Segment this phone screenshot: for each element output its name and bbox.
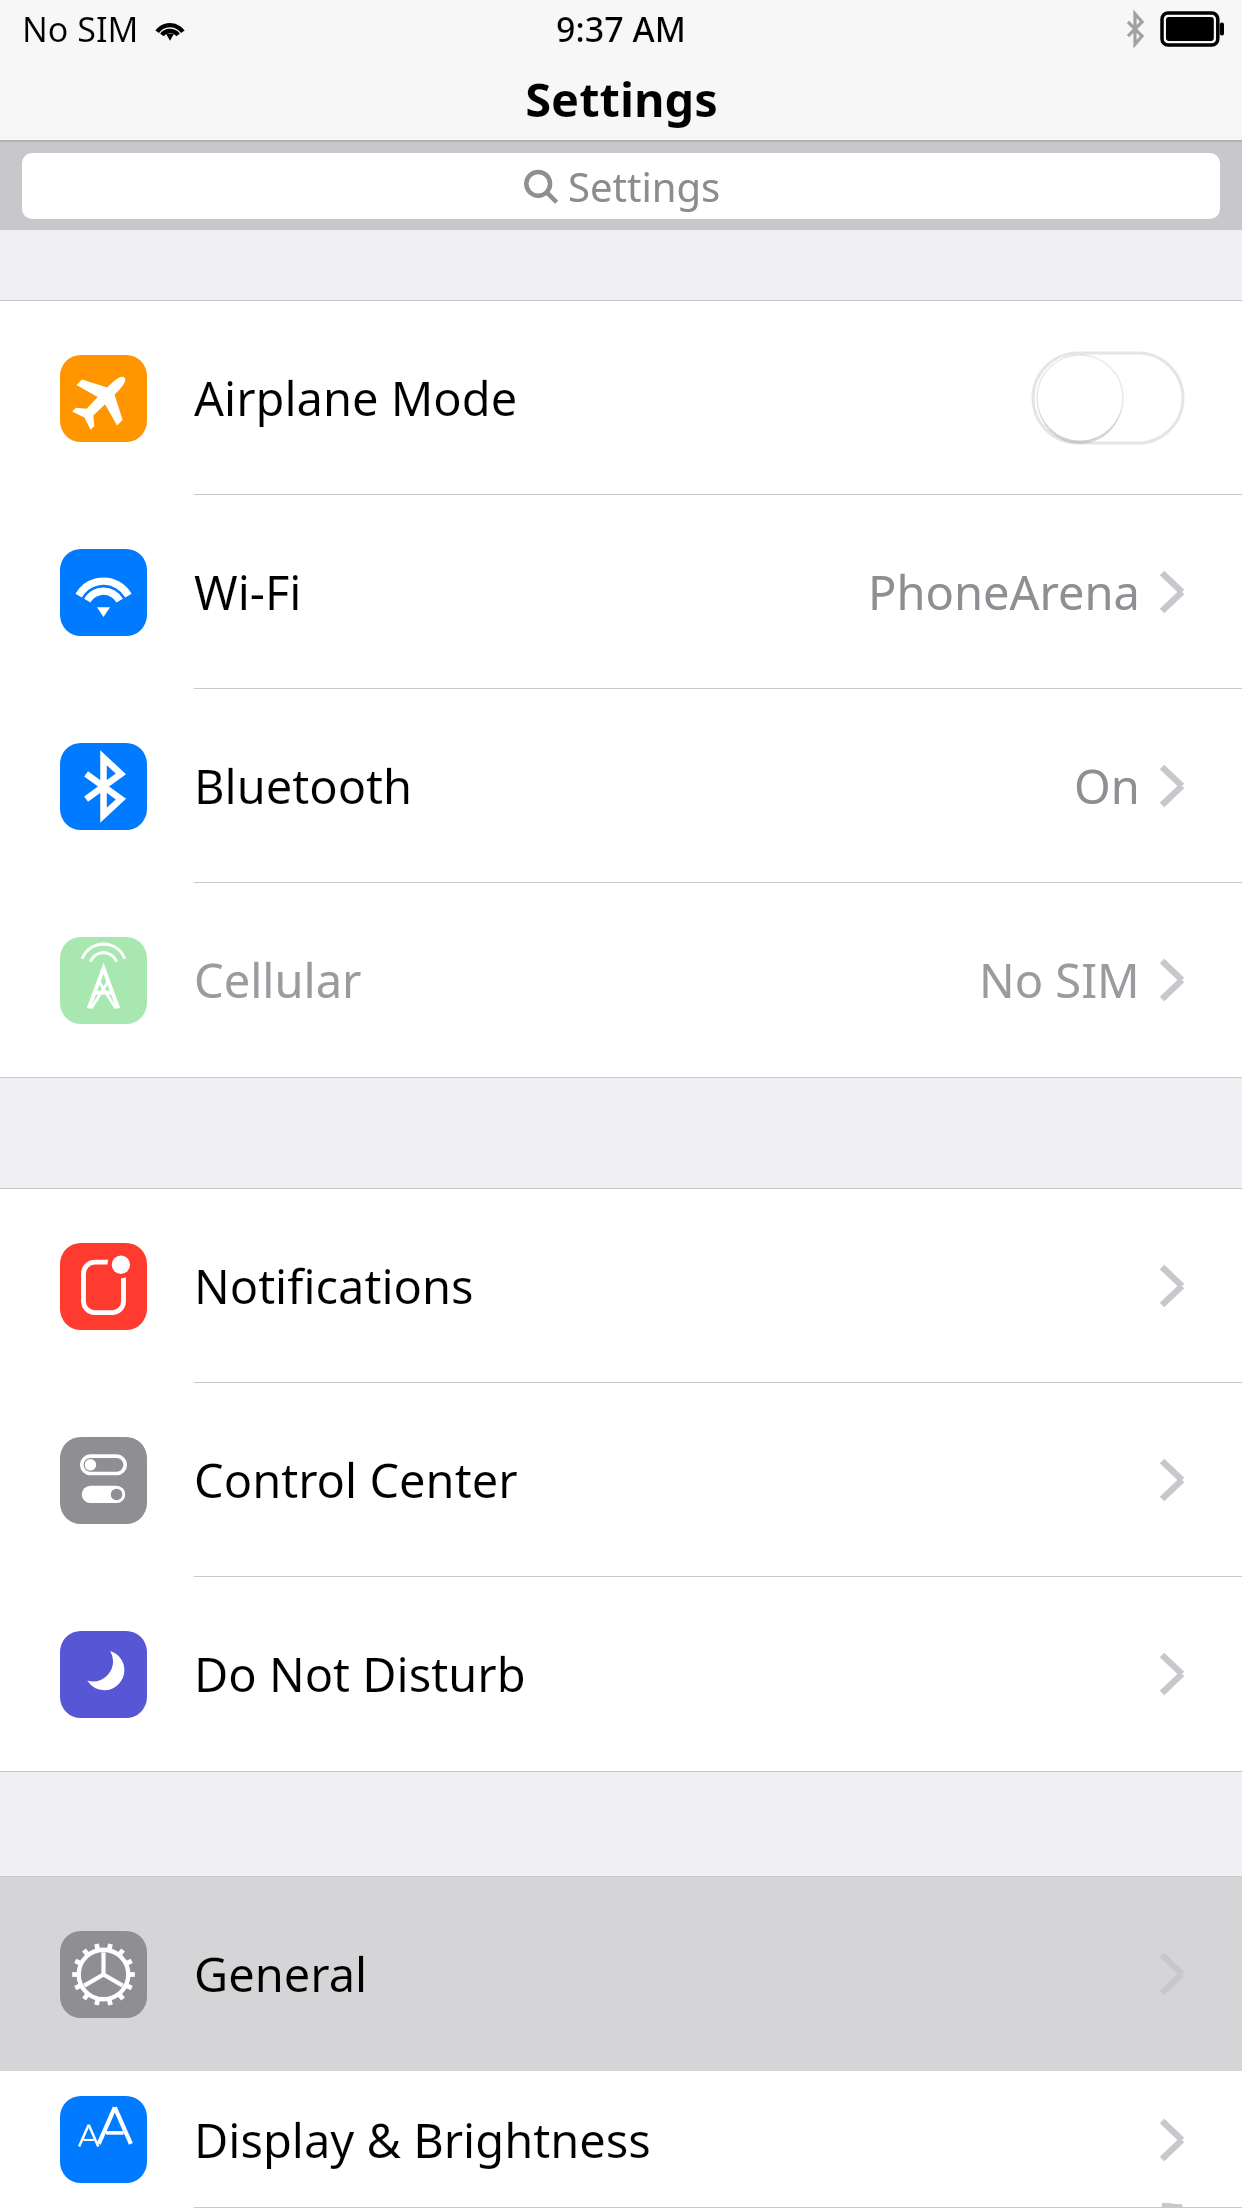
staticText: On xyxy=(1074,754,1140,818)
button[interactable]: Airplane Mode xyxy=(0,301,1242,495)
staticText: Airplane Mode xyxy=(194,366,518,430)
staticText: Bluetooth xyxy=(194,754,413,818)
staticText: Settings xyxy=(568,159,721,213)
staticText: Notifications xyxy=(194,1254,474,1318)
staticText: 9:37 AM xyxy=(556,6,686,52)
button[interactable]: General xyxy=(0,1877,1242,2071)
button[interactable]: Display & Brightness xyxy=(0,2071,1242,2208)
staticText: Cellular xyxy=(194,948,362,1012)
button[interactable]: Do Not Disturb xyxy=(0,1577,1242,1771)
staticText: No SIM xyxy=(22,6,139,52)
staticText: Wi-Fi xyxy=(194,560,302,624)
staticText: General xyxy=(194,1942,368,2006)
button[interactable]: Notifications xyxy=(0,1189,1242,1383)
button[interactable]: Settings xyxy=(22,153,1220,219)
staticText: Control Center xyxy=(194,1448,518,1512)
button[interactable]: Cellular xyxy=(0,883,1242,1077)
button[interactable]: Bluetooth xyxy=(0,689,1242,883)
staticText: Display & Brightness xyxy=(194,2108,651,2172)
staticText: No SIM xyxy=(979,948,1140,1012)
button[interactable]: Control Center xyxy=(0,1383,1242,1577)
staticText: Do Not Disturb xyxy=(194,1642,526,1706)
button[interactable]: Wi-Fi xyxy=(0,495,1242,689)
staticText: Settings xyxy=(525,67,718,131)
button[interactable]: Airplane Mode toggle xyxy=(1032,352,1184,444)
staticText: PhoneArena xyxy=(868,560,1140,624)
